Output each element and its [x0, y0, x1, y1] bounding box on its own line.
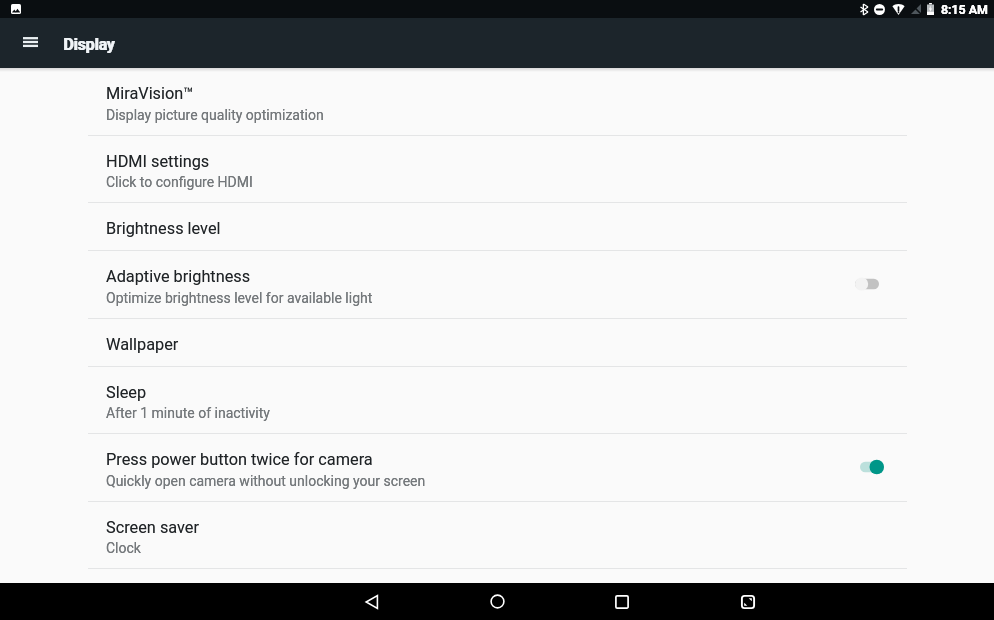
button[interactable]: Press power button twice for camera: [0, 434, 994, 502]
button[interactable]: Screen saver: [0, 502, 994, 569]
button[interactable]: Toggle: Press power button twice for cam…: [850, 450, 894, 484]
button[interactable]: Back: [348, 583, 396, 620]
staticText: Click to configure HDMI: [106, 174, 253, 190]
staticText: After 1 minute of inactivity: [106, 405, 270, 421]
staticText: Wallpaper: [106, 335, 179, 354]
staticText: Display: [63, 35, 115, 53]
button[interactable]: MiraVision™: [0, 68, 994, 136]
button[interactable]: Brightness level: [0, 203, 994, 251]
staticText: Display picture quality optimization: [106, 107, 324, 123]
staticText: MiraVision™: [106, 84, 194, 103]
button[interactable]: Toggle: Adaptive brightness: [845, 267, 889, 301]
button[interactable]: Home: [473, 583, 521, 620]
staticText: Adaptive brightness: [106, 267, 251, 286]
staticText: Quickly open camera without unlocking yo…: [106, 473, 426, 489]
staticText: Clock: [106, 540, 141, 556]
button[interactable]: Adaptive brightness: [0, 251, 994, 319]
button[interactable]: Screenshot: [724, 583, 772, 620]
staticText: 8:15 AM: [941, 2, 989, 17]
staticText: HDMI settings: [106, 152, 210, 171]
button[interactable]: Sleep: [0, 367, 994, 434]
staticText: Sleep: [106, 383, 147, 402]
staticText: Press power button twice for camera: [106, 450, 373, 469]
button[interactable]: Recent apps: [598, 583, 646, 620]
button[interactable]: HDMI settings: [0, 136, 994, 203]
button[interactable]: Wallpaper: [0, 319, 994, 367]
staticText: Optimize brightness level for available …: [106, 290, 373, 306]
staticText: Screen saver: [106, 518, 200, 537]
button[interactable]: Open navigation drawer: [6, 18, 54, 68]
staticText: Brightness level: [106, 219, 221, 238]
